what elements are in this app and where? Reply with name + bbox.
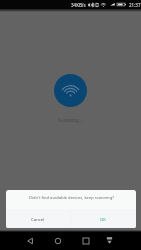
button[interactable]: OK bbox=[71, 210, 136, 228]
staticText: 34KB/s bbox=[71, 2, 86, 8]
staticText: 21:37 bbox=[129, 2, 141, 8]
button[interactable]: Scan for devices bbox=[54, 74, 87, 107]
button[interactable]: Cancel bbox=[6, 210, 70, 228]
button[interactable]: Back bbox=[20, 231, 39, 250]
button[interactable]: Home bbox=[48, 231, 67, 250]
staticText: Scanning... bbox=[58, 117, 83, 124]
staticText: Cancel bbox=[31, 216, 45, 222]
button[interactable]: Hide keyboard bbox=[100, 231, 119, 250]
staticText: Didn't find available devices, keep scan… bbox=[29, 195, 114, 201]
button[interactable]: Recents bbox=[76, 231, 95, 250]
staticText: OK bbox=[100, 216, 107, 222]
